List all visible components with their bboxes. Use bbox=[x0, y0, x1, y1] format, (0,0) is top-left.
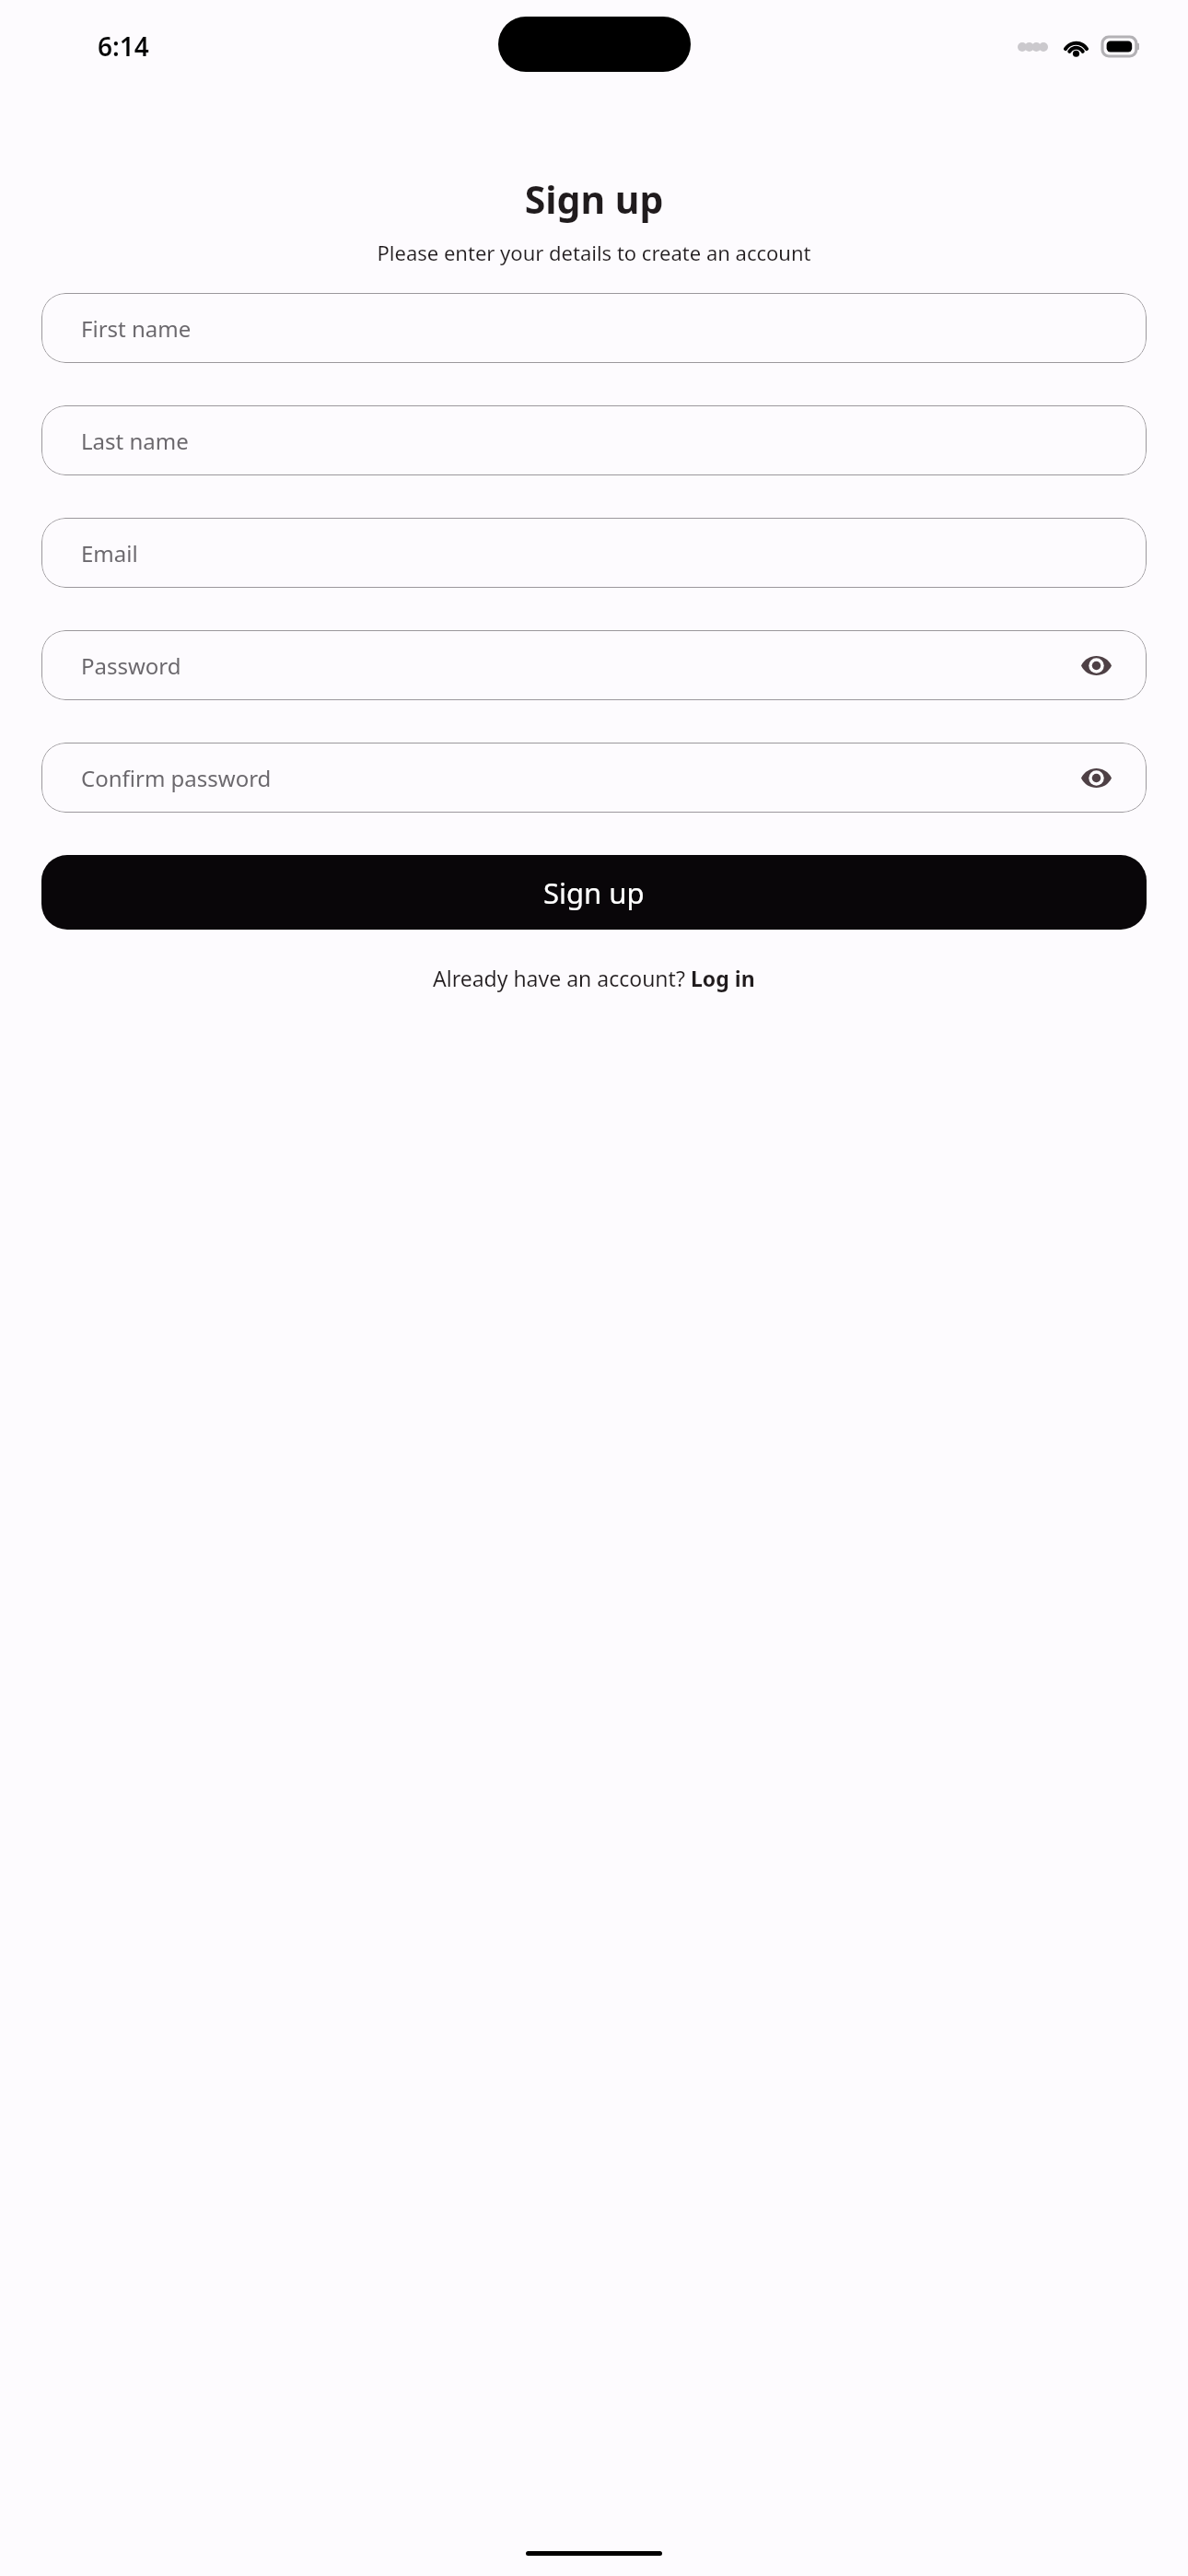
button[interactable]: Password bbox=[41, 630, 1147, 700]
staticText: First name bbox=[81, 313, 192, 344]
staticText: Password bbox=[81, 650, 181, 681]
button[interactable]: Sign up bbox=[41, 855, 1147, 930]
staticText: 6:14 bbox=[98, 29, 149, 64]
button[interactable]: Last name bbox=[41, 405, 1147, 475]
button[interactable]: Already have an account? bbox=[433, 964, 755, 992]
button[interactable]: Show password bbox=[1075, 756, 1117, 799]
staticText: Sign up bbox=[543, 873, 645, 912]
button[interactable]: First name bbox=[41, 293, 1147, 363]
staticText: Confirm password bbox=[81, 763, 272, 793]
button[interactable]: Show password bbox=[1075, 644, 1117, 686]
staticText: Log in bbox=[691, 964, 755, 992]
button[interactable]: Email bbox=[41, 518, 1147, 588]
button[interactable]: Confirm password bbox=[41, 743, 1147, 813]
staticText: Already have an account? bbox=[433, 964, 691, 992]
staticText: Email bbox=[81, 538, 138, 568]
staticText: Last name bbox=[81, 426, 189, 456]
staticText: Please enter your details to create an a… bbox=[0, 239, 1188, 266]
staticText: Sign up bbox=[0, 173, 1188, 225]
